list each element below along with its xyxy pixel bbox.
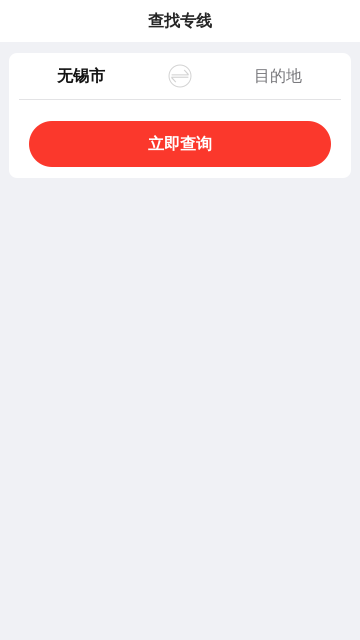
staticText: 无锡市 (57, 66, 105, 86)
button[interactable]: 立即查询 (29, 121, 331, 167)
button[interactable]: 目的地 (200, 53, 351, 99)
staticText: 立即查询 (148, 134, 212, 154)
button[interactable]: 交换出发地与目的地 (160, 53, 200, 99)
staticText: 目的地 (254, 66, 302, 86)
button[interactable]: 无锡市 (9, 53, 160, 99)
staticText: 查找专线 (148, 11, 212, 31)
